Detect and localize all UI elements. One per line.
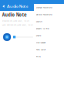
- button[interactable]: Delete Password: [34, 11, 64, 18]
- button[interactable]: Share: [34, 32, 64, 39]
- staticText: Change Password: [36, 6, 52, 9]
- button[interactable]: Search: [34, 18, 64, 25]
- button[interactable]: Wallpaper: [34, 39, 64, 46]
- button[interactable]: Play recording: [3, 33, 11, 41]
- staticText: Export to file: [36, 27, 49, 30]
- staticText: Audio Note: [2, 12, 27, 18]
- staticText: Audio Note: [7, 4, 28, 9]
- button[interactable]: Back: [2, 4, 5, 8]
- button[interactable]: Export to file: [34, 25, 64, 32]
- staticText: Print: [36, 55, 41, 58]
- staticText: Wallpaper: [36, 41, 46, 44]
- button[interactable]: Print: [34, 53, 64, 60]
- staticText: Search: [36, 20, 42, 23]
- staticText: Delete Password: [36, 13, 52, 16]
- staticText: Text Color: [36, 48, 46, 51]
- staticText: Share: [36, 34, 41, 37]
- staticText: Created 09 June 2021, 10:24: [2, 19, 29, 22]
- staticText: Last edited 09 June 2021, 10:31: [2, 23, 33, 26]
- button[interactable]: Change Password: [34, 4, 64, 11]
- button[interactable]: Text Color: [34, 46, 64, 53]
